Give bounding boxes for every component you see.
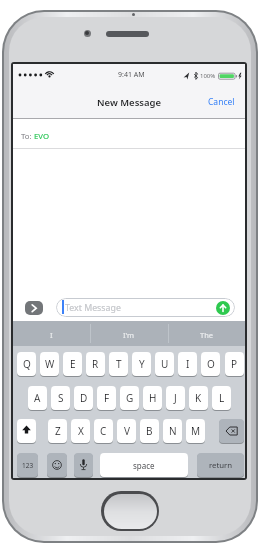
staticText: N [169, 424, 177, 438]
button[interactable]: Z [48, 419, 67, 443]
button[interactable]: space [100, 453, 188, 477]
staticText: Text Message [65, 302, 121, 314]
button[interactable]: Q [17, 352, 36, 376]
button[interactable] [101, 491, 159, 531]
button[interactable] [74, 453, 93, 477]
button[interactable]: T [109, 352, 128, 376]
button[interactable]: L [212, 386, 231, 410]
button[interactable]: K [189, 386, 208, 410]
button[interactable]: return [197, 453, 244, 477]
staticText: U [161, 357, 169, 371]
button[interactable]: A [28, 386, 47, 410]
button[interactable]: M [186, 419, 205, 443]
staticText: C [100, 424, 107, 438]
staticText: W [45, 357, 55, 371]
staticText: 100% [200, 72, 216, 80]
staticText: R [92, 357, 99, 371]
button[interactable] [216, 301, 230, 315]
staticText: return [209, 460, 233, 471]
staticText: I'm [123, 330, 135, 340]
button[interactable] [219, 419, 244, 443]
staticText: H [149, 391, 157, 405]
button[interactable]: I [13, 323, 90, 347]
staticText: L [219, 391, 225, 405]
button[interactable]: B [140, 419, 159, 443]
staticText: G [126, 391, 134, 405]
staticText: P [231, 357, 238, 371]
button[interactable] [17, 419, 36, 443]
button[interactable] [47, 453, 67, 477]
staticText: E [70, 357, 76, 371]
staticText: V [124, 424, 130, 438]
staticText: I [50, 330, 53, 340]
staticText: F [104, 391, 110, 405]
button[interactable]: Cancel [193, 96, 235, 108]
button[interactable]: C [94, 419, 113, 443]
button[interactable]: N [163, 419, 182, 443]
staticText: J [174, 391, 177, 405]
button[interactable]: The [168, 323, 245, 347]
button[interactable]: G [120, 386, 139, 410]
staticText: Y [139, 357, 145, 371]
staticText: B [146, 424, 153, 438]
staticText: 9:41 AM [118, 70, 145, 80]
button[interactable]: V [117, 419, 136, 443]
button[interactable] [25, 301, 43, 315]
staticText: X [78, 424, 84, 438]
button[interactable]: I'm [90, 323, 167, 347]
button[interactable]: E [63, 352, 82, 376]
staticText: To: [21, 131, 34, 142]
button[interactable]: F [97, 386, 116, 410]
button[interactable]: X [71, 419, 90, 443]
staticText: I [186, 357, 190, 371]
staticText: 123 [22, 461, 34, 470]
staticText: D [80, 391, 88, 405]
staticText: The [200, 330, 214, 340]
button[interactable]: W [40, 352, 59, 376]
button[interactable]: R [86, 352, 105, 376]
button[interactable]: U [155, 352, 174, 376]
staticText: New Message [97, 96, 162, 108]
staticText: T [116, 357, 122, 371]
button[interactable]: Y [132, 352, 151, 376]
button[interactable]: S [51, 386, 70, 410]
button[interactable] [56, 298, 235, 317]
button[interactable]: H [143, 386, 162, 410]
staticText: M [191, 424, 201, 438]
staticText: O [207, 357, 215, 371]
staticText: EVO [34, 131, 50, 142]
button[interactable]: J [166, 386, 185, 410]
staticText: Cancel [208, 96, 235, 108]
staticText: Z [55, 424, 61, 438]
button[interactable]: 123 [17, 453, 38, 477]
staticText: S [58, 391, 64, 405]
staticText: A [34, 391, 41, 405]
button[interactable]: P [225, 352, 244, 376]
button[interactable]: O [201, 352, 220, 376]
button[interactable]: D [74, 386, 93, 410]
button[interactable]: I [178, 352, 197, 376]
staticText: space [133, 460, 155, 471]
staticText: Q [23, 357, 31, 371]
staticText: K [195, 391, 202, 405]
